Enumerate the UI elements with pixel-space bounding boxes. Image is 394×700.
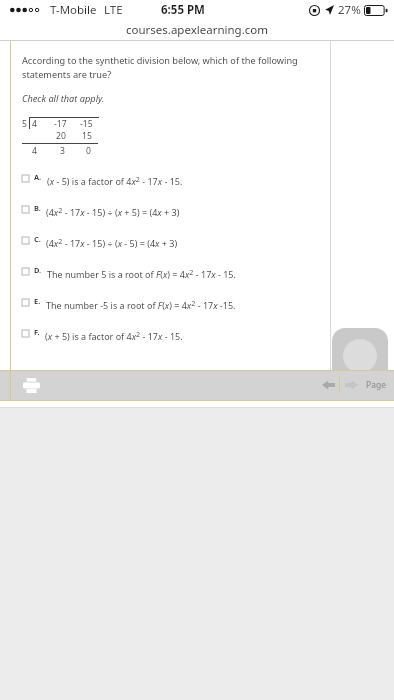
button[interactable]: B. [22,205,394,219]
button[interactable]: Next page [340,374,362,396]
staticText: C. [34,234,41,244]
button[interactable]: Previous page [317,374,339,396]
button[interactable]: courses.apexlearning.com [0,20,394,40]
staticText: (x + 5) is a factor of 4x2 - 17x - 15. [45,329,183,343]
staticText: E. [34,296,41,306]
staticText: LTE [104,2,123,18]
staticText: (4x2 - 17x - 15) ÷ (x - 5) = (4x + 3) [46,236,178,250]
staticText: According to the synthetic division belo… [22,54,298,81]
staticText: -15 [80,118,93,130]
staticText: Check all that apply. [22,92,105,105]
button[interactable]: Print [18,372,44,398]
staticText: Page [366,379,386,391]
staticText: 4 [32,118,37,130]
staticText: courses.apexlearning.com [126,22,269,38]
staticText: The number -5 is a root of F(x) = 4x2 - … [46,298,236,312]
staticText: 0 [86,145,91,157]
staticText: 27% [338,2,361,18]
button[interactable]: A. [22,174,394,188]
staticText: (4x2 - 17x - 15) ÷ (x + 5) = (4x + 3) [46,205,180,219]
staticText: The number 5 is a root of F(x) = 4x2 - 1… [47,267,236,281]
staticText: 3 [60,145,65,157]
staticText: 4 [32,145,37,157]
button[interactable]: C. [22,236,394,250]
button[interactable]: F. [22,329,394,343]
button[interactable]: E. [22,298,394,312]
button[interactable]: D. [22,267,394,281]
staticText: F. [34,327,40,337]
staticText: D. [34,265,42,275]
staticText: 15 [82,130,92,142]
staticText: T-Mobile [50,2,97,18]
button[interactable]: Scroll indicator [332,328,388,384]
staticText: 6:55 PM [161,2,205,18]
staticText: 20 [56,130,66,142]
staticText: 5 [22,118,27,130]
staticText: B. [34,203,41,213]
staticText: -17 [54,118,67,130]
staticText: A. [34,172,42,182]
staticText: (x - 5) is a factor of 4x2 - 17x - 15. [47,174,183,188]
